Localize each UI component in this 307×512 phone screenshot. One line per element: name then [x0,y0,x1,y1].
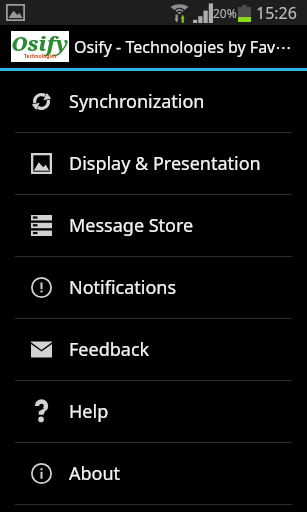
button[interactable]: Help [0,381,307,442]
button[interactable]: Osify [0,25,307,68]
staticText: Synchronization [69,89,205,114]
staticText: Osify [11,30,69,57]
button[interactable]: Notifications [0,257,307,318]
button[interactable]: About [0,443,307,504]
button[interactable]: Message Store [0,195,307,256]
staticText: 15:26 [256,2,297,24]
staticText: 20% [213,5,237,21]
staticText: Display & Presentation [69,151,261,176]
button[interactable]: Feedback [0,319,307,380]
staticText: About [69,461,121,486]
staticText: Osify - Technologies by Fav⋯ [74,36,292,58]
staticText: Feedback [69,337,150,362]
staticText: Help [69,399,109,424]
staticText: Message Store [69,213,194,238]
button[interactable]: Display & Presentation [0,133,307,194]
staticText: Technologies [24,53,57,60]
staticText: Notifications [69,275,177,300]
button[interactable]: Synchronization [0,71,307,132]
